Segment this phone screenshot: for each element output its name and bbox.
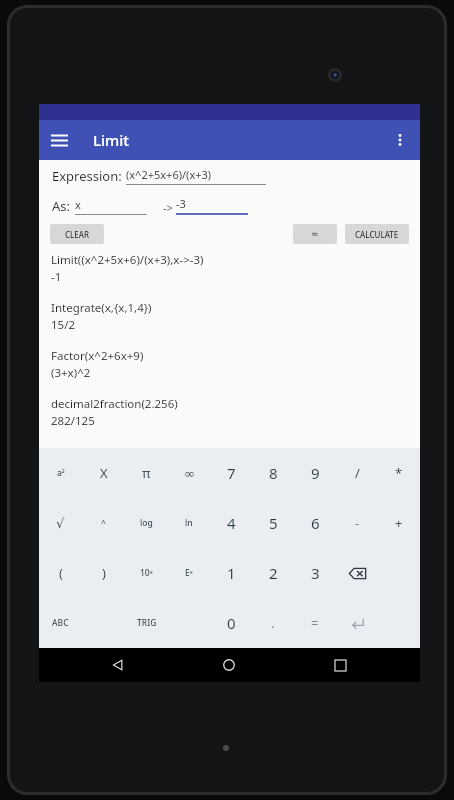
staticText: Factor(x^2+6x+9) xyxy=(51,348,144,364)
staticText: Limit((x^2+5x+6)/(x+3),x->-3) xyxy=(51,252,204,268)
button[interactable]: 0 xyxy=(210,598,252,648)
button[interactable]: 8 xyxy=(252,448,294,498)
staticText: ABC xyxy=(52,617,69,629)
button[interactable]: π xyxy=(125,448,168,498)
staticText: decimal2fraction(2.256) xyxy=(51,396,178,412)
button[interactable]: X xyxy=(82,448,125,498)
staticText: (3+x)^2 xyxy=(51,365,91,381)
staticText: (x^2+5x+6)/(x+3) xyxy=(126,167,212,182)
staticText: Eˣ xyxy=(185,567,193,579)
button[interactable]: ∞ xyxy=(168,448,210,498)
staticText: = xyxy=(311,614,319,632)
staticText: Expression: xyxy=(52,167,122,185)
button[interactable]: Enter xyxy=(336,598,378,648)
staticText: x xyxy=(75,197,81,212)
staticText: ≈ xyxy=(311,229,319,239)
staticText: CLEAR xyxy=(65,229,90,240)
staticText: -1 xyxy=(51,269,62,285)
button[interactable]: * xyxy=(378,448,420,498)
button[interactable]: 6 xyxy=(294,498,336,548)
button[interactable]: / xyxy=(336,448,378,498)
staticText: 10ˣ xyxy=(140,567,153,579)
button[interactable]: 10ˣ xyxy=(125,548,168,598)
staticText: . xyxy=(271,614,275,632)
staticText: ∞ xyxy=(184,466,195,481)
staticText: 1 xyxy=(227,563,236,583)
button[interactable]: ABC xyxy=(39,598,82,648)
button[interactable]: 7 xyxy=(210,448,252,498)
button[interactable]: (x^2+5x+6)/(x+3) xyxy=(126,167,266,185)
button[interactable]: ( xyxy=(39,548,82,598)
button[interactable]: a² xyxy=(39,448,82,498)
staticText: + xyxy=(395,514,403,532)
button[interactable]: x xyxy=(75,197,147,215)
button[interactable]: TRIG xyxy=(125,598,168,648)
button[interactable]: CALCULATE xyxy=(345,224,409,244)
button[interactable]: 3 xyxy=(294,548,336,598)
staticText: log xyxy=(140,517,153,529)
button[interactable]: 2 xyxy=(252,548,294,598)
staticText: 5 xyxy=(269,513,278,533)
button[interactable]: More options xyxy=(380,120,420,160)
button[interactable]: Eˣ xyxy=(168,548,210,598)
button[interactable]: home xyxy=(214,650,244,680)
button[interactable]: recents xyxy=(325,650,355,680)
staticText: TRIG xyxy=(137,617,157,629)
button[interactable]: log xyxy=(125,498,168,548)
staticText: - xyxy=(355,514,360,532)
staticText: 15/2 xyxy=(51,317,76,333)
staticText: As: xyxy=(52,197,71,215)
staticText: π xyxy=(142,464,151,482)
button[interactable]: -3 xyxy=(176,196,248,215)
staticText: Integrate(x,{x,1,4}) xyxy=(51,300,152,316)
button[interactable]: ln xyxy=(168,498,210,548)
staticText: 4 xyxy=(227,513,236,533)
button[interactable]: √ xyxy=(39,498,82,548)
button[interactable]: - xyxy=(336,498,378,548)
staticText: X xyxy=(100,464,108,482)
staticText: ) xyxy=(102,564,106,582)
staticText: 8 xyxy=(269,463,278,483)
staticText: ln xyxy=(185,517,193,529)
staticText: / xyxy=(355,464,360,482)
staticText: 282/125 xyxy=(51,413,95,429)
staticText: 9 xyxy=(311,463,320,483)
staticText: 2 xyxy=(269,563,278,583)
staticText: 6 xyxy=(311,513,320,533)
button[interactable]: 5 xyxy=(252,498,294,548)
button[interactable]: ≈ xyxy=(293,224,337,244)
button[interactable]: Backspace xyxy=(336,548,378,598)
staticText: ( xyxy=(59,564,63,582)
staticText: Limit xyxy=(93,130,130,150)
button[interactable]: ) xyxy=(82,548,125,598)
staticText: * xyxy=(395,464,403,482)
staticText: CALCULATE xyxy=(355,229,399,240)
staticText: a² xyxy=(57,467,65,479)
staticText: -3 xyxy=(176,196,186,211)
staticText: √ xyxy=(56,516,65,531)
button[interactable]: 9 xyxy=(294,448,336,498)
button[interactable]: CLEAR xyxy=(50,224,104,244)
button[interactable]: = xyxy=(294,598,336,648)
staticText: 0 xyxy=(227,613,236,633)
button[interactable]: back xyxy=(103,650,133,680)
button[interactable]: Open navigation menu xyxy=(39,120,79,160)
staticText: 7 xyxy=(227,463,236,483)
staticText: 3 xyxy=(311,563,320,583)
button[interactable]: 1 xyxy=(210,548,252,598)
staticText: -> xyxy=(163,200,173,215)
button[interactable]: + xyxy=(378,498,420,548)
button[interactable]: ^ xyxy=(82,498,125,548)
button[interactable]: 4 xyxy=(210,498,252,548)
staticText: ^ xyxy=(101,517,106,529)
